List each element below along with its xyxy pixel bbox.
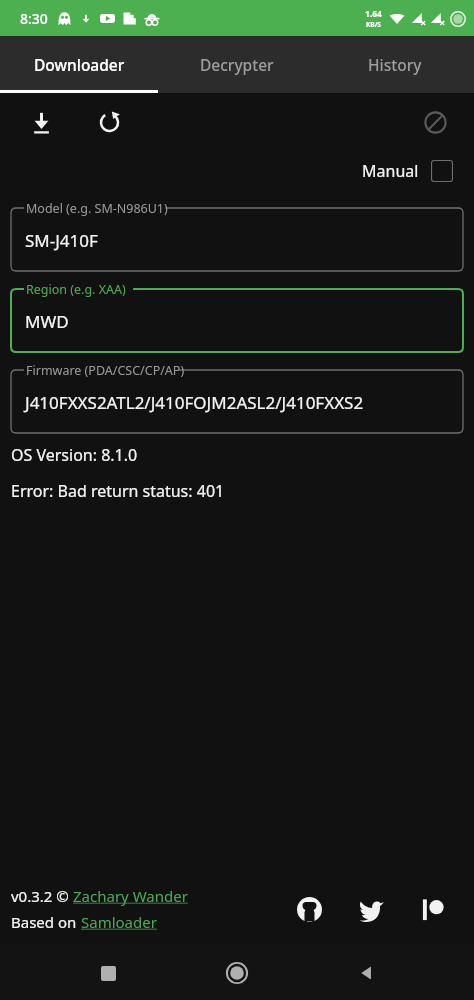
staticText: History: [368, 54, 422, 75]
button[interactable]: Zachary Wander: [73, 886, 188, 906]
button[interactable]: Downloader: [0, 36, 158, 93]
staticText: Manual: [362, 160, 419, 182]
button[interactable]: Samloader: [81, 912, 157, 932]
staticText: 8:30: [20, 9, 48, 28]
staticText: MWD: [25, 310, 69, 333]
button[interactable]: Back: [345, 951, 389, 995]
staticText: OS Version: 8.1.0: [11, 444, 138, 466]
staticText: SM-J410F: [25, 229, 98, 252]
staticText: Zachary Wander: [73, 886, 188, 906]
staticText: Model (e.g. SM-N986U1): [26, 200, 168, 217]
button[interactable]: Firmware (PDA/CSC/CP/AP): [11, 361, 463, 433]
button[interactable]: Cancel: [418, 105, 452, 139]
staticText: 1.64: [365, 8, 382, 20]
staticText: Firmware (PDA/CSC/CP/AP): [26, 362, 185, 379]
staticText: Region (e.g. XAA): [26, 281, 126, 298]
staticText: Error: Bad return status: 401: [11, 480, 225, 502]
button[interactable]: Home: [215, 951, 259, 995]
staticText: Decrypter: [200, 54, 274, 75]
button[interactable]: Decrypter: [158, 36, 316, 93]
button[interactable]: History: [316, 36, 474, 93]
staticText: Samloader: [81, 912, 157, 932]
button[interactable]: Refresh: [92, 105, 126, 139]
button[interactable]: Recents: [86, 951, 130, 995]
staticText: KB/S: [366, 20, 381, 29]
button[interactable]: Download: [24, 105, 58, 139]
button[interactable]: Twitter: [352, 890, 390, 928]
staticText: Based on: [11, 912, 81, 932]
button[interactable]: Patreon: [414, 890, 452, 928]
staticText: J410FXXS2ATL2/J410FOJM2ASL2/J410FXXS2: [25, 391, 364, 414]
staticText: Downloader: [34, 54, 125, 75]
button[interactable]: Model (e.g. SM-N986U1): [11, 199, 463, 271]
button[interactable]: Manual: [362, 160, 453, 182]
button[interactable]: Region (e.g. XAA): [11, 280, 463, 352]
staticText: v0.3.2 ©: [11, 886, 73, 906]
button[interactable]: GitHub: [290, 890, 328, 928]
